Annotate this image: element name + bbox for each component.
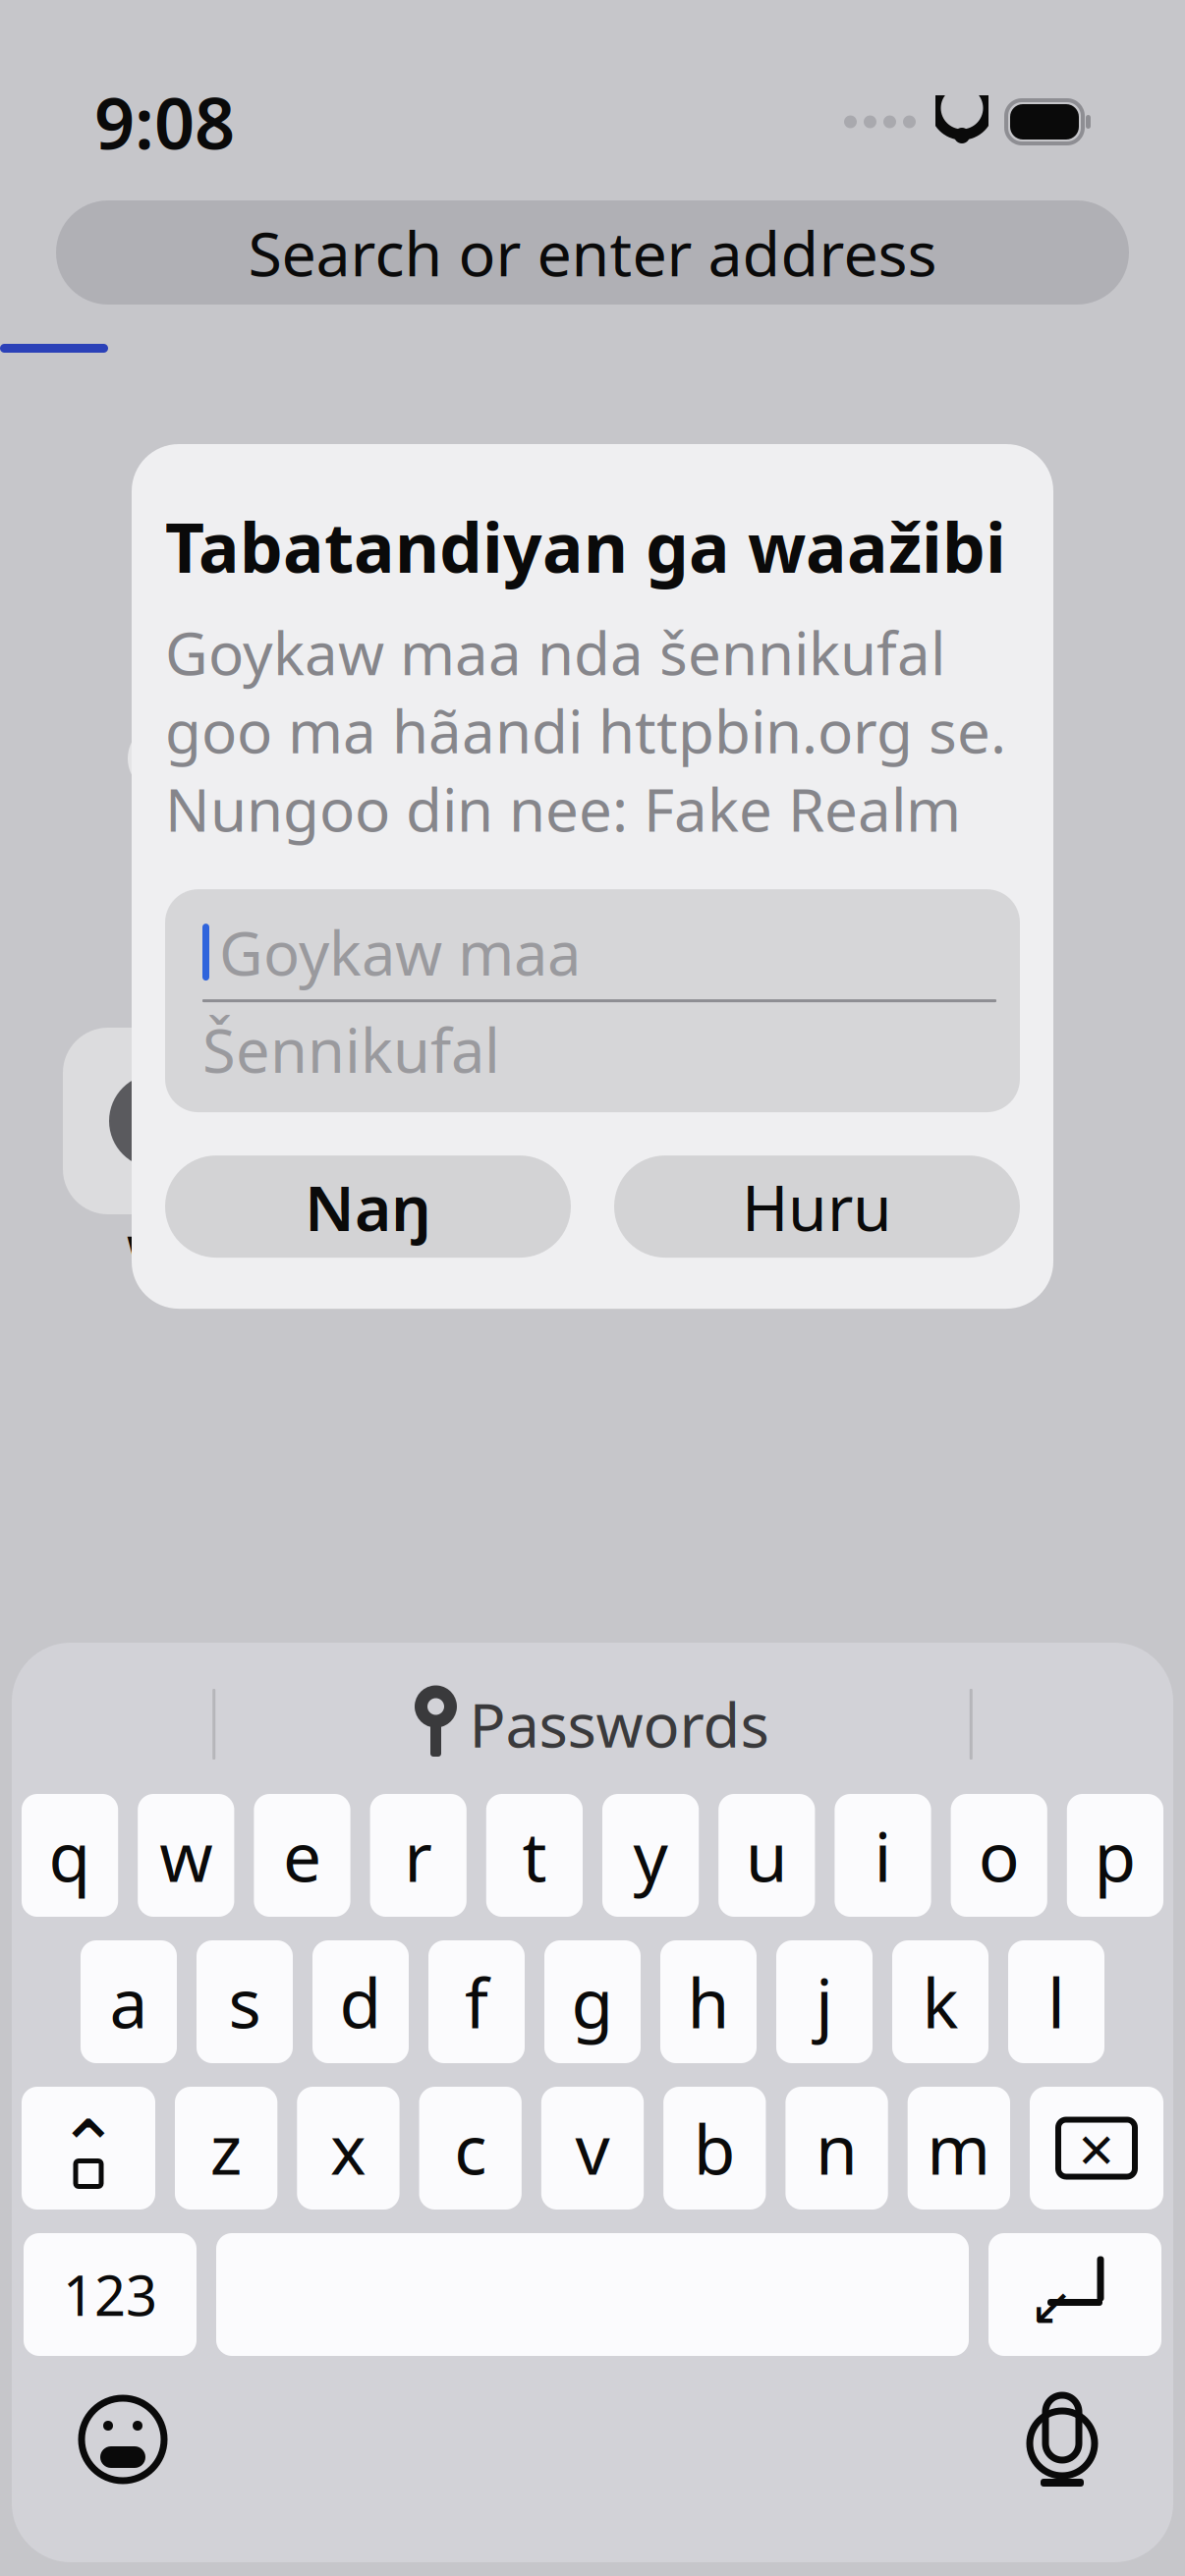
staticText: x <box>330 2103 366 2193</box>
staticText: Wi <box>127 1221 186 1287</box>
button[interactable]: Emoji <box>69 2385 177 2493</box>
button[interactable]: l <box>1008 1940 1104 2063</box>
button[interactable]: t <box>486 1794 583 1917</box>
button[interactable]: y <box>602 1794 699 1917</box>
button[interactable]: i <box>835 1794 931 1917</box>
button[interactable]: b <box>663 2087 766 2210</box>
button[interactable]: m <box>908 2087 1010 2210</box>
staticText: n <box>925 940 956 1006</box>
staticText: p <box>1094 1810 1136 1901</box>
button[interactable]: e <box>254 1794 350 1917</box>
button[interactable]: x <box>297 2087 400 2210</box>
staticText: q <box>49 1810 91 1901</box>
button[interactable]: o <box>951 1794 1047 1917</box>
staticText: r <box>404 1810 433 1901</box>
button[interactable]: k <box>892 1940 988 2063</box>
staticText: m <box>927 2103 991 2193</box>
staticText: Naŋ <box>305 1165 431 1248</box>
button[interactable]: j <box>776 1940 873 2063</box>
staticText: y <box>633 1810 668 1901</box>
staticText: G <box>226 940 263 1006</box>
button[interactable]: Return <box>988 2233 1161 2356</box>
button[interactable]: v <box>541 2087 644 2210</box>
staticText: v <box>575 2103 610 2193</box>
button[interactable]: Search or enter address <box>56 200 1129 305</box>
button[interactable]: p <box>1067 1794 1163 1917</box>
button[interactable]: Shift <box>22 2087 155 2210</box>
button[interactable]: Huru <box>614 1155 1020 1258</box>
staticText: t <box>522 1810 547 1901</box>
button[interactable]: Naŋ <box>165 1155 571 1258</box>
staticText: w <box>159 1810 213 1901</box>
staticText: d <box>339 1957 382 2047</box>
staticText: Tabatandiyan ga waažibi <box>165 501 1006 592</box>
staticText: c <box>454 2103 487 2193</box>
button[interactable]: q <box>22 1794 118 1917</box>
staticText: n <box>816 2103 858 2193</box>
staticText: j <box>816 1957 833 2047</box>
button[interactable]: z <box>175 2087 277 2210</box>
button[interactable]: n <box>785 2087 888 2210</box>
button[interactable]: g <box>544 1940 641 2063</box>
button[interactable]: r <box>370 1794 467 1917</box>
button[interactable]: s <box>197 1940 293 2063</box>
button[interactable]: f <box>428 1940 525 2063</box>
button[interactable]: c <box>419 2087 522 2210</box>
staticText: ⌃ <box>56 2105 120 2191</box>
staticText: • <box>152 718 174 798</box>
staticText: Huru <box>742 1165 892 1248</box>
staticText: s <box>228 1957 261 2047</box>
staticText: h <box>687 1957 730 2047</box>
staticText: Goykaw maa nda šennikufal goo ma hãandi … <box>165 613 1006 848</box>
staticText: Search or enter address <box>248 212 937 293</box>
staticText: Goykaw maa <box>219 912 581 992</box>
staticText: k <box>922 1957 959 2047</box>
staticText: g <box>571 1957 614 2047</box>
button[interactable]: u <box>718 1794 815 1917</box>
button[interactable]: a <box>81 1940 177 2063</box>
staticText: u <box>746 1810 788 1901</box>
staticText: 9:08 <box>94 75 235 169</box>
button[interactable]: d <box>312 1940 409 2063</box>
staticText: i <box>874 1810 892 1901</box>
staticText: a <box>110 1957 148 2047</box>
button[interactable]: Passwords <box>416 1684 769 1764</box>
button[interactable]: h <box>660 1940 757 2063</box>
button[interactable]: Dictation <box>1008 2385 1116 2493</box>
staticText: o <box>978 1810 1020 1901</box>
staticText: l <box>1047 1957 1065 2047</box>
staticText: Šennikufal <box>202 1009 500 1089</box>
button[interactable]: Space <box>216 2233 969 2356</box>
staticText: Passwords <box>469 1684 769 1764</box>
staticText: ↙ <box>1029 2277 1073 2336</box>
staticText: b <box>694 2103 736 2193</box>
staticText: × <box>1078 2106 1115 2190</box>
button[interactable]: 123 <box>24 2233 197 2356</box>
staticText: z <box>210 2103 242 2193</box>
staticText: e <box>283 1810 321 1901</box>
staticText: 123 <box>63 2258 157 2331</box>
staticText: f <box>465 1957 488 2047</box>
button[interactable]: Delete <box>1030 2087 1163 2210</box>
button[interactable]: w <box>138 1794 234 1917</box>
